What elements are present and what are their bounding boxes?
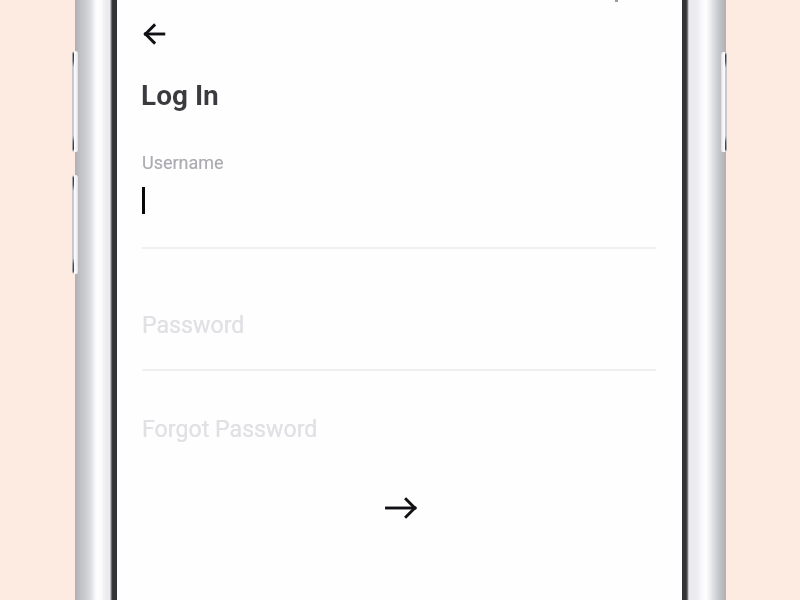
button[interactable]: Back — [121, 10, 169, 58]
staticText: Forgot Password — [142, 415, 318, 442]
staticText: Password — [142, 311, 245, 338]
button[interactable]: Forgot Password — [142, 412, 320, 446]
staticText: Log In — [141, 79, 219, 112]
staticText: Username — [142, 152, 224, 173]
button[interactable]: Continue — [363, 484, 441, 532]
button[interactable]: Username — [142, 148, 657, 249]
button[interactable]: Password — [142, 300, 657, 371]
